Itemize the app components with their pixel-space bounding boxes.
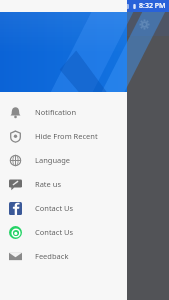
staticText: Rate us: [35, 179, 61, 189]
button[interactable]: Settings: [135, 15, 153, 33]
button[interactable]: Notification: [0, 100, 127, 124]
staticText: 8:32 PM: [139, 1, 166, 11]
staticText: Feedback: [35, 251, 69, 261]
staticText: Hide From Recent: [35, 131, 98, 141]
button[interactable]: Contact Us: [0, 196, 127, 220]
staticText: Contact Us: [35, 227, 74, 237]
staticText: Dual: [87, 70, 97, 76]
button[interactable]: Rate us: [0, 172, 127, 196]
staticText: Contact Us: [35, 203, 74, 213]
button[interactable]: Language: [0, 148, 127, 172]
button[interactable]: Dual: [0, 92, 169, 142]
button[interactable]: Contact Us: [0, 220, 127, 244]
button[interactable]: Feedback: [0, 244, 127, 268]
button[interactable]: Hide From Recent: [0, 124, 127, 148]
staticText: Language: [35, 155, 71, 165]
staticText: Instagram: [70, 78, 100, 86]
button[interactable]: Dual: [0, 42, 169, 92]
staticText: Notification: [35, 107, 77, 117]
staticText: Messenger: [69, 128, 101, 136]
